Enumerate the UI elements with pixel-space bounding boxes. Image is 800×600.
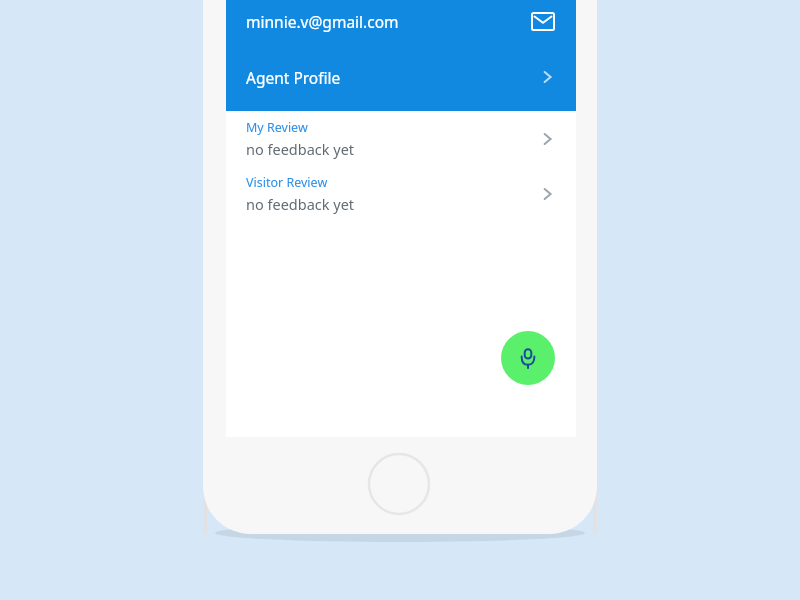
staticText: Visitor Review bbox=[246, 174, 328, 191]
staticText: no feedback yet bbox=[246, 139, 355, 159]
button[interactable]: Visitor Review bbox=[226, 166, 576, 221]
staticText: My Review bbox=[246, 119, 308, 136]
staticText: Agent Profile bbox=[246, 67, 341, 88]
button[interactable]: My Review bbox=[226, 111, 576, 166]
button[interactable]: Mail bbox=[530, 8, 556, 34]
button[interactable]: Agent Profile bbox=[226, 52, 576, 102]
staticText: no feedback yet bbox=[246, 194, 355, 214]
button[interactable]: Voice input bbox=[501, 331, 555, 385]
button[interactable]: minnie.v@gmail.com bbox=[226, 0, 576, 52]
staticText: minnie.v@gmail.com bbox=[246, 11, 399, 32]
button[interactable]: Home bbox=[368, 453, 430, 515]
